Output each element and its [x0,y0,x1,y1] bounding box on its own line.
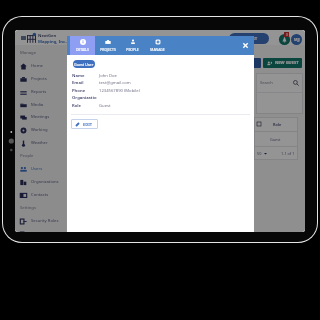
staticText: Mapping, Inc... [38,39,69,45]
staticText: Role [72,103,82,109]
button[interactable]: MANAGE [145,36,170,55]
staticText: Guest User [74,62,94,67]
button[interactable]: Media [15,99,66,111]
button[interactable]: Guest User [73,60,95,68]
button[interactable]: PROJECTS [95,36,120,55]
staticText: Media [31,102,44,108]
staticText: Name [72,73,85,79]
staticText: John Doe [99,73,117,79]
button[interactable]: Close [242,42,249,49]
staticText: Phone [72,88,86,94]
button[interactable]: Users [15,163,66,175]
button[interactable]: Meetings [15,111,66,123]
button[interactable]: EXPORT [229,33,269,44]
button[interactable]: Home [15,60,66,72]
staticText: NEW GUEST [275,60,299,66]
staticText: EDIT [83,122,93,127]
button[interactable]: DETAILS [70,36,95,55]
staticText: Organization [72,95,99,103]
button[interactable]: NEW GUEST [263,58,302,68]
staticText: 3 [286,33,288,37]
staticText: Organizations [31,179,59,185]
staticText: NextGen [38,33,57,39]
staticText: MANAGE [150,47,165,52]
staticText: Meetings [31,114,50,120]
staticText: Guest [99,103,111,109]
button[interactable]: Working [15,124,66,136]
staticText: DETAILS [76,47,89,52]
button[interactable]: Projects [15,73,66,85]
staticText: Security Roles [31,218,59,224]
staticText: Manage [20,50,37,56]
button[interactable]: Menu [19,34,28,42]
staticText: Weather [31,140,48,146]
staticText: Projects [31,76,47,82]
staticText: Home [31,63,43,69]
button[interactable]: Notifications [278,31,291,44]
staticText: Working [31,127,48,133]
button[interactable]: Reports [15,86,66,98]
staticText: Email [72,80,84,86]
button[interactable]: Organizations [15,176,66,188]
staticText: Users [31,166,43,172]
button[interactable]: Filter [250,58,261,68]
staticText: 1-1 of 1 [281,151,295,156]
button[interactable]: Security Roles [15,215,66,227]
staticText: 1234567890 (Mobile) [99,88,140,94]
button[interactable]: Weather [15,137,66,149]
staticText: PEOPLE [126,47,139,52]
staticText: Reports [31,89,47,95]
button[interactable]: Profile [291,34,302,45]
staticText: People [20,153,34,159]
staticText: Settings [20,205,36,211]
staticText: Contacts [31,192,49,198]
staticText: Search [260,80,273,85]
staticText: Guest [270,137,281,142]
staticText: MJJ [294,37,300,42]
button[interactable]: PEOPLE [120,36,145,55]
staticText: PROJECTS [100,47,116,52]
staticText: test@gmail.com [99,80,131,86]
button[interactable]: EDIT [71,119,98,129]
button[interactable]: Contacts [15,189,66,201]
staticText: Role [273,122,282,127]
staticText: 50 [257,151,262,156]
button[interactable]: Templates [15,228,66,232]
staticText: EXPORT [241,36,258,42]
